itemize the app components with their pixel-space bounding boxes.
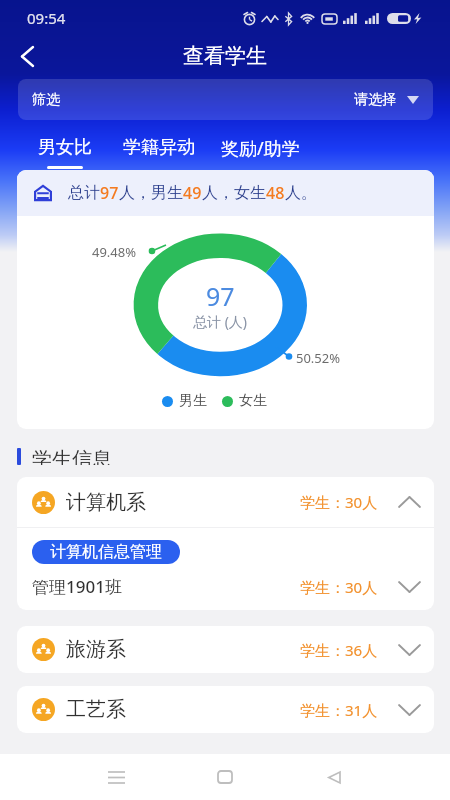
button[interactable]: 旅游系	[17, 626, 434, 673]
staticText: 学生：30人	[300, 492, 378, 512]
staticText: 旅游系	[66, 637, 126, 662]
staticText: 计算机信息管理	[50, 542, 162, 562]
staticText: 奖励/助学	[221, 136, 300, 161]
staticText: 人，女生	[202, 183, 266, 203]
staticText: 人，男生	[119, 183, 183, 203]
button[interactable]: 工艺系	[17, 686, 434, 733]
staticText: 学生：36人	[300, 640, 378, 660]
staticText: 学籍异动	[123, 136, 195, 159]
staticText: 总计 (人)	[193, 312, 248, 331]
button[interactable]: 筛选	[18, 79, 433, 120]
staticText: 97	[206, 279, 235, 313]
staticText: 学生信息	[32, 447, 112, 465]
staticText: 管理1901班	[32, 575, 122, 598]
staticText: 查看学生	[183, 43, 267, 69]
staticText: 请选择	[354, 91, 396, 109]
staticText: 50.52%	[296, 349, 341, 367]
staticText: 97	[100, 182, 119, 204]
button[interactable]: Recent apps	[98, 759, 134, 795]
button[interactable]: 男女比	[38, 136, 92, 169]
staticText: 男生	[179, 392, 207, 410]
button[interactable]: 学籍异动	[123, 136, 195, 166]
staticText: 学生：31人	[300, 700, 378, 720]
staticText: 49	[183, 182, 202, 204]
staticText: 筛选	[32, 91, 60, 109]
staticText: 49.48%	[92, 243, 137, 261]
staticText: 工艺系	[66, 697, 126, 722]
staticText: 计算机系	[66, 490, 146, 515]
button[interactable]: 管理1901班	[17, 567, 434, 606]
button[interactable]: 计算机系	[17, 477, 434, 527]
button[interactable]: Home	[207, 759, 243, 795]
staticText: 总计	[68, 183, 100, 203]
staticText: 男女比	[38, 136, 92, 159]
button[interactable]: 奖励/助学	[221, 136, 300, 168]
staticText: 女生	[239, 392, 267, 410]
staticText: 48	[266, 182, 285, 204]
staticText: 学生：30人	[300, 577, 378, 597]
staticText: 人。	[285, 183, 317, 203]
button[interactable]: Back	[12, 41, 42, 71]
button[interactable]: Back	[316, 759, 352, 795]
button[interactable]: 计算机信息管理	[32, 540, 180, 564]
staticText: 09:54	[27, 8, 66, 28]
